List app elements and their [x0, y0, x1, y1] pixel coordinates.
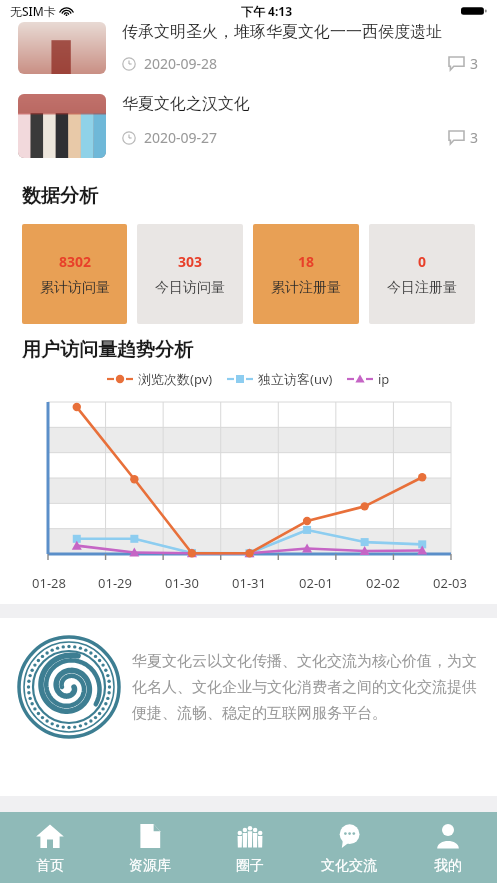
staticText: 8302 — [59, 252, 92, 271]
staticText: 303 — [178, 252, 203, 271]
button[interactable]: 圈子 — [200, 812, 299, 883]
button[interactable]: 华夏文化之汉文化 — [0, 84, 497, 168]
staticText: 02-03 — [433, 574, 467, 592]
staticText: 2020-09-28 — [144, 54, 218, 73]
button[interactable]: 文化交流 — [299, 812, 398, 883]
staticText: 3 — [470, 54, 479, 73]
staticText: 2020-09-27 — [144, 128, 218, 147]
staticText: 无SIM卡 — [10, 3, 56, 19]
button[interactable]: 资源库 — [100, 812, 200, 883]
staticText: 累计访问量 — [40, 279, 110, 297]
button[interactable]: 0 — [369, 224, 475, 324]
staticText: 我的 — [434, 857, 462, 875]
staticText: 独立访客(uv) — [258, 370, 333, 388]
staticText: 用户访问量趋势分析 — [22, 338, 193, 362]
button[interactable]: 传承文明圣火，堆琢华夏文化一一西侯度遗址 — [0, 22, 497, 84]
staticText: 01-28 — [32, 574, 66, 592]
staticText: 01-31 — [232, 574, 266, 592]
staticText: 0 — [418, 252, 427, 271]
staticText: 资源库 — [129, 857, 171, 875]
staticText: 华夏文化云以文化传播、文化交流为核心价值，为文化名人、文化企业与文化消费者之间的… — [132, 652, 481, 723]
button[interactable]: 8302 — [22, 224, 127, 324]
staticText: 数据分析 — [22, 184, 98, 208]
staticText: 华夏文化之汉文化 — [122, 94, 250, 114]
staticText: 首页 — [36, 857, 64, 875]
staticText: 传承文明圣火，堆琢华夏文化一一西侯度遗址 — [122, 22, 442, 42]
staticText: 今日注册量 — [387, 279, 457, 297]
staticText: 01-29 — [98, 574, 132, 592]
button[interactable]: 18 — [253, 224, 359, 324]
staticText: 3 — [470, 128, 479, 147]
staticText: 累计注册量 — [271, 279, 341, 297]
staticText: 浏览次数(pv) — [138, 370, 213, 388]
staticText: 02-01 — [299, 574, 333, 592]
staticText: 01-30 — [165, 574, 199, 592]
staticText: 02-02 — [366, 574, 400, 592]
staticText: 文化交流 — [321, 857, 377, 875]
staticText: 今日访问量 — [155, 279, 225, 297]
staticText: 下午 4:13 — [241, 3, 293, 19]
button[interactable]: 我的 — [398, 812, 497, 883]
staticText: ip — [378, 370, 390, 388]
button[interactable]: 首页 — [0, 812, 100, 883]
button[interactable]: 303 — [137, 224, 243, 324]
staticText: 圈子 — [236, 857, 264, 875]
staticText: 18 — [298, 252, 315, 271]
